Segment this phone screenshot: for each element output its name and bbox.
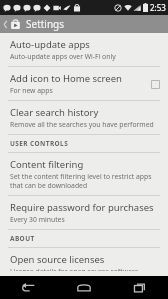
button[interactable]: Navigate up <box>0 15 104 33</box>
button[interactable]: Open source licenses <box>0 248 168 276</box>
button[interactable]: Add icon to Home screen checkbox <box>148 77 162 91</box>
staticText: Every 30 minutes <box>10 215 65 224</box>
staticText: Add icon to Home screen <box>10 72 122 85</box>
staticText: Open source licenses <box>10 253 105 266</box>
staticText: For new apps <box>10 86 53 95</box>
staticText: Set the content filtering level to restr… <box>10 172 162 190</box>
staticText: Auto-update apps <box>10 38 90 51</box>
button[interactable]: Clear search history <box>0 101 168 134</box>
staticText: Remove all the searches you have perform… <box>10 120 154 129</box>
staticText: 2:53 <box>150 2 166 13</box>
button[interactable]: Add icon to Home screen <box>0 67 168 100</box>
button[interactable]: Recent apps <box>112 276 168 299</box>
button[interactable]: Require password for purchases <box>0 196 168 229</box>
button[interactable]: Content filtering <box>0 153 168 195</box>
staticText: Auto-update apps over Wi-Fi only <box>10 52 116 61</box>
staticText: Require password for purchases <box>10 201 154 214</box>
staticText: Clear search history <box>10 106 99 119</box>
staticText: USER CONTROLS <box>10 139 69 148</box>
button[interactable]: Auto-update apps <box>0 33 168 66</box>
button[interactable]: Home <box>56 276 112 299</box>
staticText: ABOUT <box>10 234 35 243</box>
staticText: Settings <box>26 17 65 31</box>
staticText: Content filtering <box>10 158 84 171</box>
button[interactable]: Back <box>0 276 56 299</box>
staticText: License details for open source software <box>10 267 139 271</box>
